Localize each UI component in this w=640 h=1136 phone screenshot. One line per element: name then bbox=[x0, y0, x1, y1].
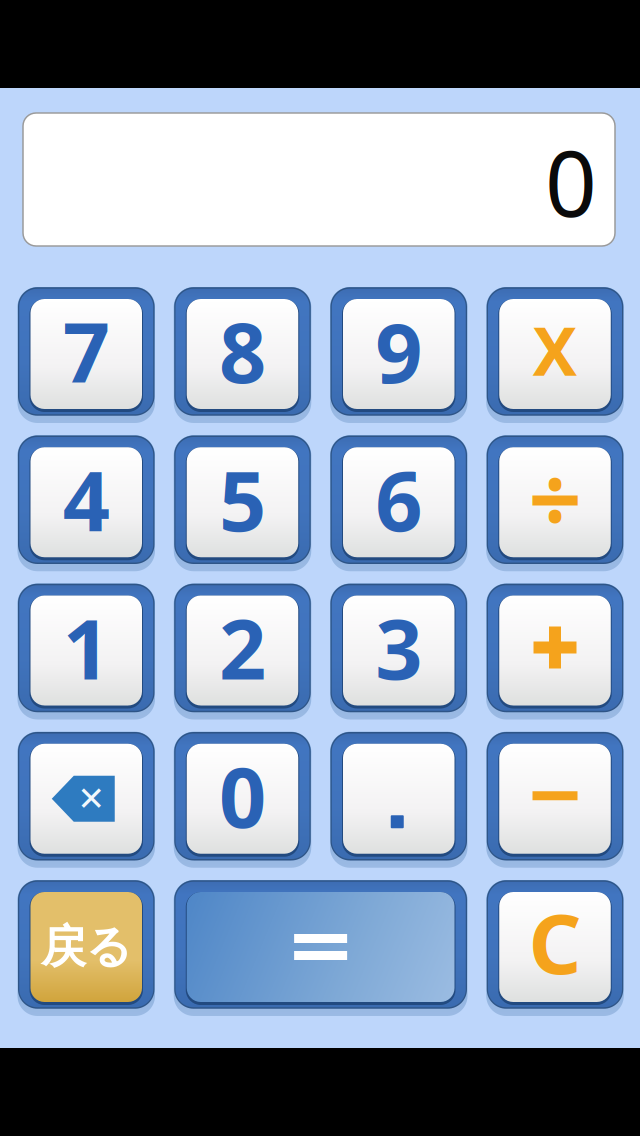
button[interactable]: 0 bbox=[174, 732, 311, 868]
staticText: 4 bbox=[63, 444, 110, 554]
staticText: C bbox=[528, 887, 581, 997]
staticText: 戻る bbox=[41, 919, 132, 975]
button[interactable]: 7 bbox=[17, 287, 155, 423]
button[interactable]: Plus bbox=[486, 583, 624, 719]
staticText: 6 bbox=[375, 444, 422, 554]
button[interactable]: ÷ bbox=[486, 435, 624, 571]
button[interactable]: 5 bbox=[174, 435, 311, 571]
staticText: 0 bbox=[219, 741, 266, 851]
staticText: 9 bbox=[375, 296, 422, 406]
button[interactable]: C bbox=[486, 880, 624, 1016]
staticText: 2 bbox=[219, 593, 266, 702]
button[interactable]: 9 bbox=[330, 287, 467, 423]
staticText: 8 bbox=[219, 296, 266, 406]
button[interactable]: 8 bbox=[174, 287, 311, 423]
button[interactable]: Decimal point bbox=[330, 732, 467, 868]
staticText: X bbox=[532, 306, 577, 394]
button[interactable]: 3 bbox=[330, 583, 467, 719]
button[interactable]: 2 bbox=[174, 583, 311, 719]
button[interactable]: 戻る bbox=[17, 880, 155, 1016]
staticText: 0 bbox=[545, 121, 597, 242]
button[interactable]: X bbox=[486, 287, 624, 423]
button[interactable]: 6 bbox=[330, 435, 467, 571]
staticText: ÷ bbox=[528, 435, 581, 559]
staticText: ✕ bbox=[77, 780, 105, 818]
button[interactable]: Minus bbox=[486, 732, 624, 868]
staticText: 7 bbox=[63, 296, 110, 406]
staticText: 3 bbox=[375, 593, 422, 702]
button[interactable]: 1 bbox=[17, 583, 155, 719]
staticText: 1 bbox=[63, 593, 110, 702]
button[interactable]: Equals bbox=[174, 880, 468, 1016]
staticText: 5 bbox=[219, 444, 266, 554]
button[interactable]: Backspace bbox=[17, 732, 155, 868]
button[interactable]: 4 bbox=[17, 435, 155, 571]
